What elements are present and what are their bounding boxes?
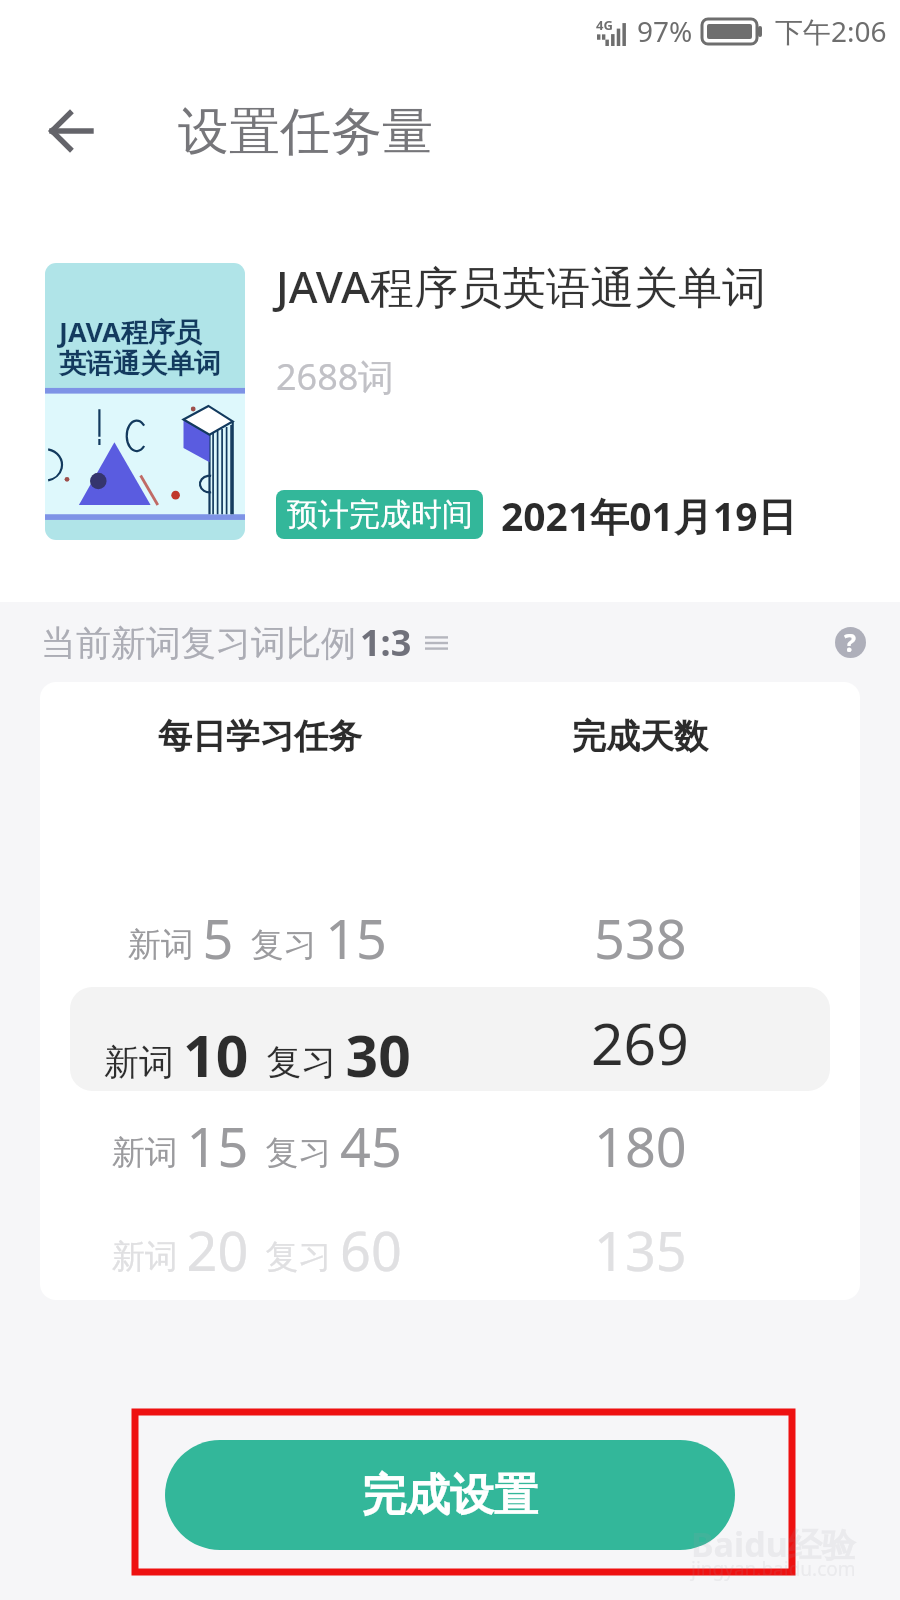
staticText: 538 — [594, 901, 687, 975]
staticText: 设置任务量 — [178, 100, 433, 164]
staticText: jingyan.baidu.com — [691, 1556, 856, 1582]
staticText: 135 — [594, 1213, 687, 1287]
staticText: 269 — [591, 1004, 689, 1082]
staticText: Baidu经验 — [691, 1521, 856, 1567]
button[interactable]: 新词 5 复习 15 — [40, 886, 860, 990]
staticText: JAVA程序员英语通关单词 — [276, 256, 766, 316]
button[interactable]: Help — [828, 620, 872, 664]
staticText: 新词 20 复习 60 — [112, 1213, 402, 1287]
staticText: 当前新词复习词比例 — [41, 621, 356, 665]
staticText: 新词 10 复习 30 — [104, 1016, 411, 1094]
button[interactable]: 新词 15 复习 45 — [40, 1094, 860, 1198]
staticText: 1:3 — [360, 618, 412, 667]
button[interactable] — [70, 987, 830, 1091]
staticText: 2021年01月19日 — [501, 489, 797, 542]
staticText: 97% — [637, 12, 693, 50]
staticText: 4G — [596, 16, 613, 34]
staticText: 每日学习任务 — [158, 715, 362, 758]
button[interactable]: 新词 10 复习 30 — [40, 991, 860, 1095]
staticText: 180 — [594, 1109, 687, 1183]
button[interactable]: 新词 20 复习 60 — [40, 1198, 860, 1300]
staticText: 完成设置 — [362, 1468, 538, 1523]
staticText: 下午2:06 — [775, 12, 887, 50]
staticText: JAVA程序员 英语通关单词 — [59, 313, 221, 381]
staticText: 2688词 — [276, 352, 395, 401]
staticText: 新词 5 复习 15 — [128, 901, 387, 975]
staticText: 新词 15 复习 45 — [112, 1109, 402, 1183]
button[interactable]: Back — [26, 83, 114, 171]
staticText: 完成天数 — [572, 715, 708, 758]
staticText: 预计完成时间 — [287, 495, 473, 534]
staticText: ? — [844, 625, 856, 659]
button[interactable]: 完成设置 — [165, 1440, 735, 1550]
